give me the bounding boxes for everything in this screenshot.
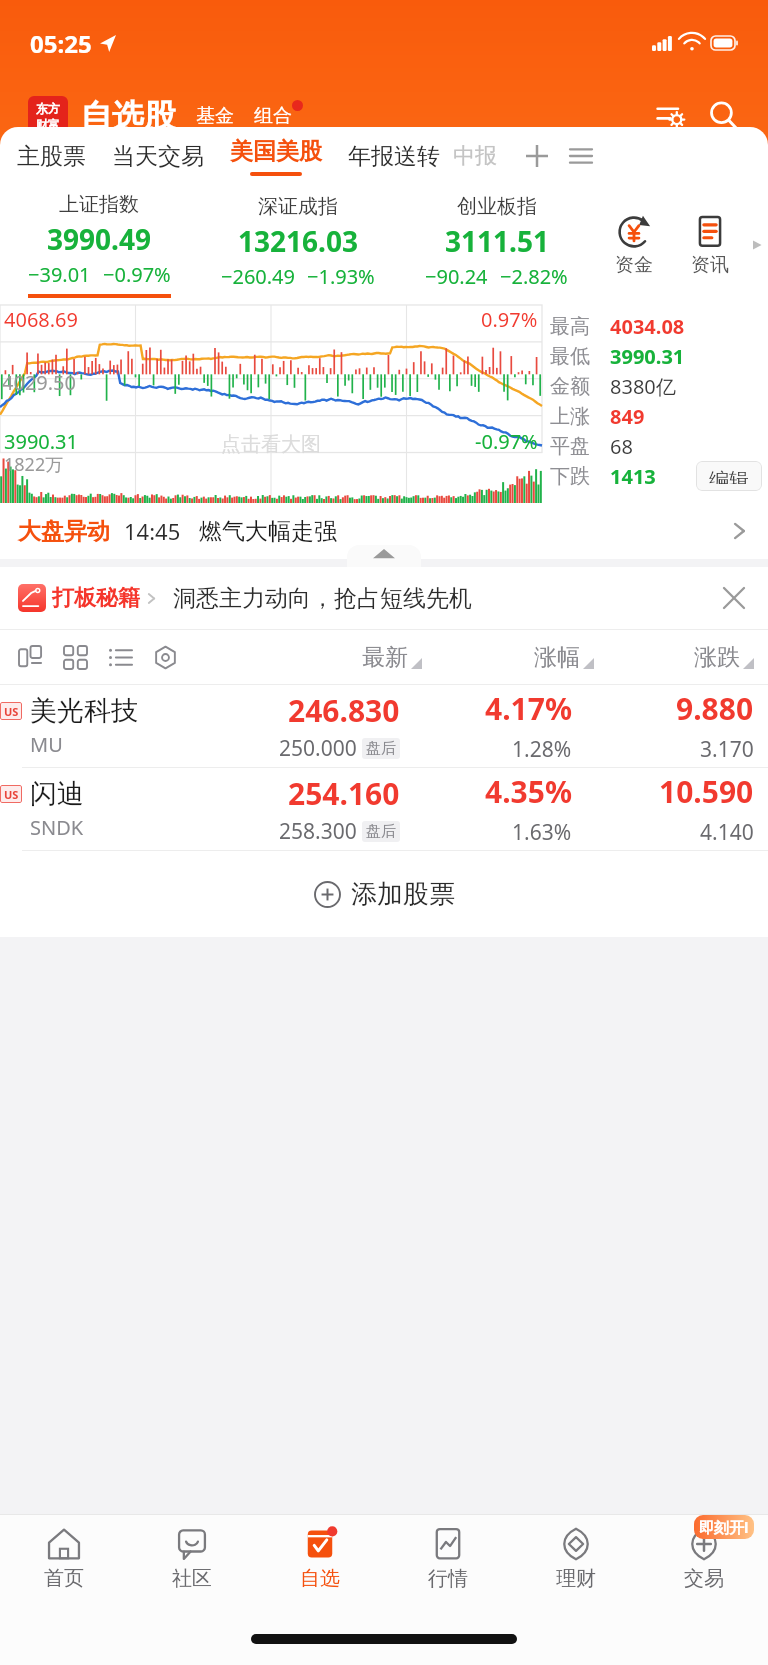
staticText: 最新 (362, 643, 408, 672)
staticText: 14:45 (124, 516, 181, 546)
staticText: 金额 (550, 374, 604, 399)
staticText: 9.880 (676, 688, 754, 729)
staticText: 258.300 (279, 817, 357, 846)
staticText: 燃气大幅走强 (199, 517, 337, 546)
staticText: −1.93% (307, 263, 375, 290)
button[interactable]: 自选 (256, 1515, 384, 1613)
staticText: 编辑 (709, 468, 749, 484)
button[interactable]: 深证成指 (198, 194, 397, 296)
staticText: 洞悉主力动向，抢占短线先机 (173, 584, 472, 613)
staticText: 1822万 (4, 452, 64, 477)
staticText: 财富 (36, 117, 60, 132)
button[interactable]: 基金 (192, 100, 238, 132)
staticText: 年报送转 (348, 142, 440, 171)
staticText: −90.24 (425, 263, 488, 290)
button[interactable]: 年报送转 (335, 127, 453, 185)
staticText: 首页 (44, 1566, 84, 1591)
staticText: 涨跌 (694, 643, 740, 672)
staticText: 平盘 (550, 434, 604, 459)
staticText: 8380亿 (610, 373, 676, 400)
staticText: 上涨 (550, 404, 604, 429)
button[interactable]: US (0, 768, 768, 850)
button[interactable]: 中报送 (453, 127, 515, 185)
staticText: 自选股 (80, 96, 176, 136)
staticText: 深证成指 (258, 194, 338, 219)
staticText: 3111.51 (445, 222, 549, 260)
staticText: 即刻开l (699, 1517, 749, 1537)
button[interactable]: 主股票 (4, 127, 99, 185)
staticText: 3.170 (700, 735, 754, 764)
button[interactable]: 打板秘籍 (0, 567, 768, 629)
staticText: 246.830 (288, 690, 400, 731)
staticText: 自选 (300, 1566, 340, 1591)
button[interactable]: Add group (515, 127, 559, 185)
staticText: 东方 (36, 101, 60, 116)
staticText: 4.35% (485, 771, 572, 812)
button[interactable]: Split view (12, 639, 48, 675)
button[interactable]: 首页 (0, 1515, 128, 1613)
button[interactable]: Manage list (650, 94, 694, 138)
button[interactable]: 资讯 (672, 214, 748, 277)
staticText: 最高 (550, 314, 604, 339)
staticText: −2.82% (500, 263, 568, 290)
button[interactable]: 创业板指 (397, 194, 596, 296)
button[interactable]: 编辑 (696, 461, 762, 491)
staticText: 大盘异动 (18, 517, 110, 546)
button[interactable]: Collapse panel (347, 545, 421, 569)
staticText: 点击看大图 (221, 432, 321, 457)
staticText: 闪迪 (30, 777, 84, 811)
staticText: 3990.49 (47, 220, 151, 258)
button[interactable]: 社区 (128, 1515, 256, 1613)
staticText: 最低 (550, 344, 604, 369)
button[interactable]: 大盘异动 (0, 503, 768, 559)
staticText: 1.63% (512, 818, 572, 847)
button[interactable]: 当天交易 (99, 127, 217, 185)
staticText: 资讯 (691, 253, 729, 277)
button[interactable]: List view (102, 639, 138, 675)
staticText: 打板秘籍 (52, 584, 140, 612)
button[interactable]: US (0, 685, 768, 767)
staticText: 250.000 (279, 734, 357, 763)
staticText: 上证指数 (59, 192, 139, 217)
button[interactable]: Close banner (716, 580, 752, 616)
staticText: US (4, 787, 19, 802)
staticText: -0.97% (475, 428, 538, 455)
staticText: 美光科技 (30, 694, 138, 728)
staticText: SNDK (30, 814, 84, 841)
staticText: 理财 (556, 1566, 596, 1591)
button[interactable]: 最新 (242, 630, 422, 684)
staticText: −260.49 (221, 263, 295, 290)
staticText: 涨幅 (534, 643, 580, 672)
button[interactable]: 美国美股 (217, 127, 335, 185)
staticText: US (4, 704, 19, 719)
button[interactable]: 上证指数 (0, 192, 198, 298)
button[interactable]: 理财 (512, 1515, 640, 1613)
staticText: 添加股票 (351, 878, 455, 911)
staticText: 资金 (615, 253, 653, 277)
staticText: 创业板指 (457, 194, 537, 219)
staticText: 4068.69 (4, 306, 78, 333)
button[interactable]: All groups (559, 127, 603, 185)
staticText: 美国美股 (230, 137, 322, 166)
button[interactable]: Search (702, 94, 746, 138)
button[interactable]: 涨幅 (422, 630, 594, 684)
staticText: 4.140 (700, 818, 754, 847)
button[interactable]: Grid view (57, 639, 93, 675)
staticText: 4029.50 (2, 369, 76, 396)
button[interactable]: 添加股票 (0, 851, 768, 937)
staticText: 基金 (196, 104, 234, 128)
staticText: MU (30, 731, 63, 758)
button[interactable]: 涨跌 (594, 630, 754, 684)
staticText: 13216.03 (238, 222, 358, 260)
staticText: 组合 (254, 104, 292, 128)
staticText: 0.97% (481, 306, 538, 333)
button[interactable]: Display settings (147, 639, 183, 675)
staticText: 1413 (610, 463, 656, 490)
staticText: 3990.31 (4, 428, 78, 455)
button[interactable]: 组合 (250, 100, 307, 132)
button[interactable]: 资金 (596, 214, 672, 277)
button[interactable]: 行情 (384, 1515, 512, 1613)
button[interactable]: 交易 (640, 1515, 768, 1613)
staticText: 68 (610, 433, 633, 460)
staticText: −0.97% (103, 261, 171, 288)
